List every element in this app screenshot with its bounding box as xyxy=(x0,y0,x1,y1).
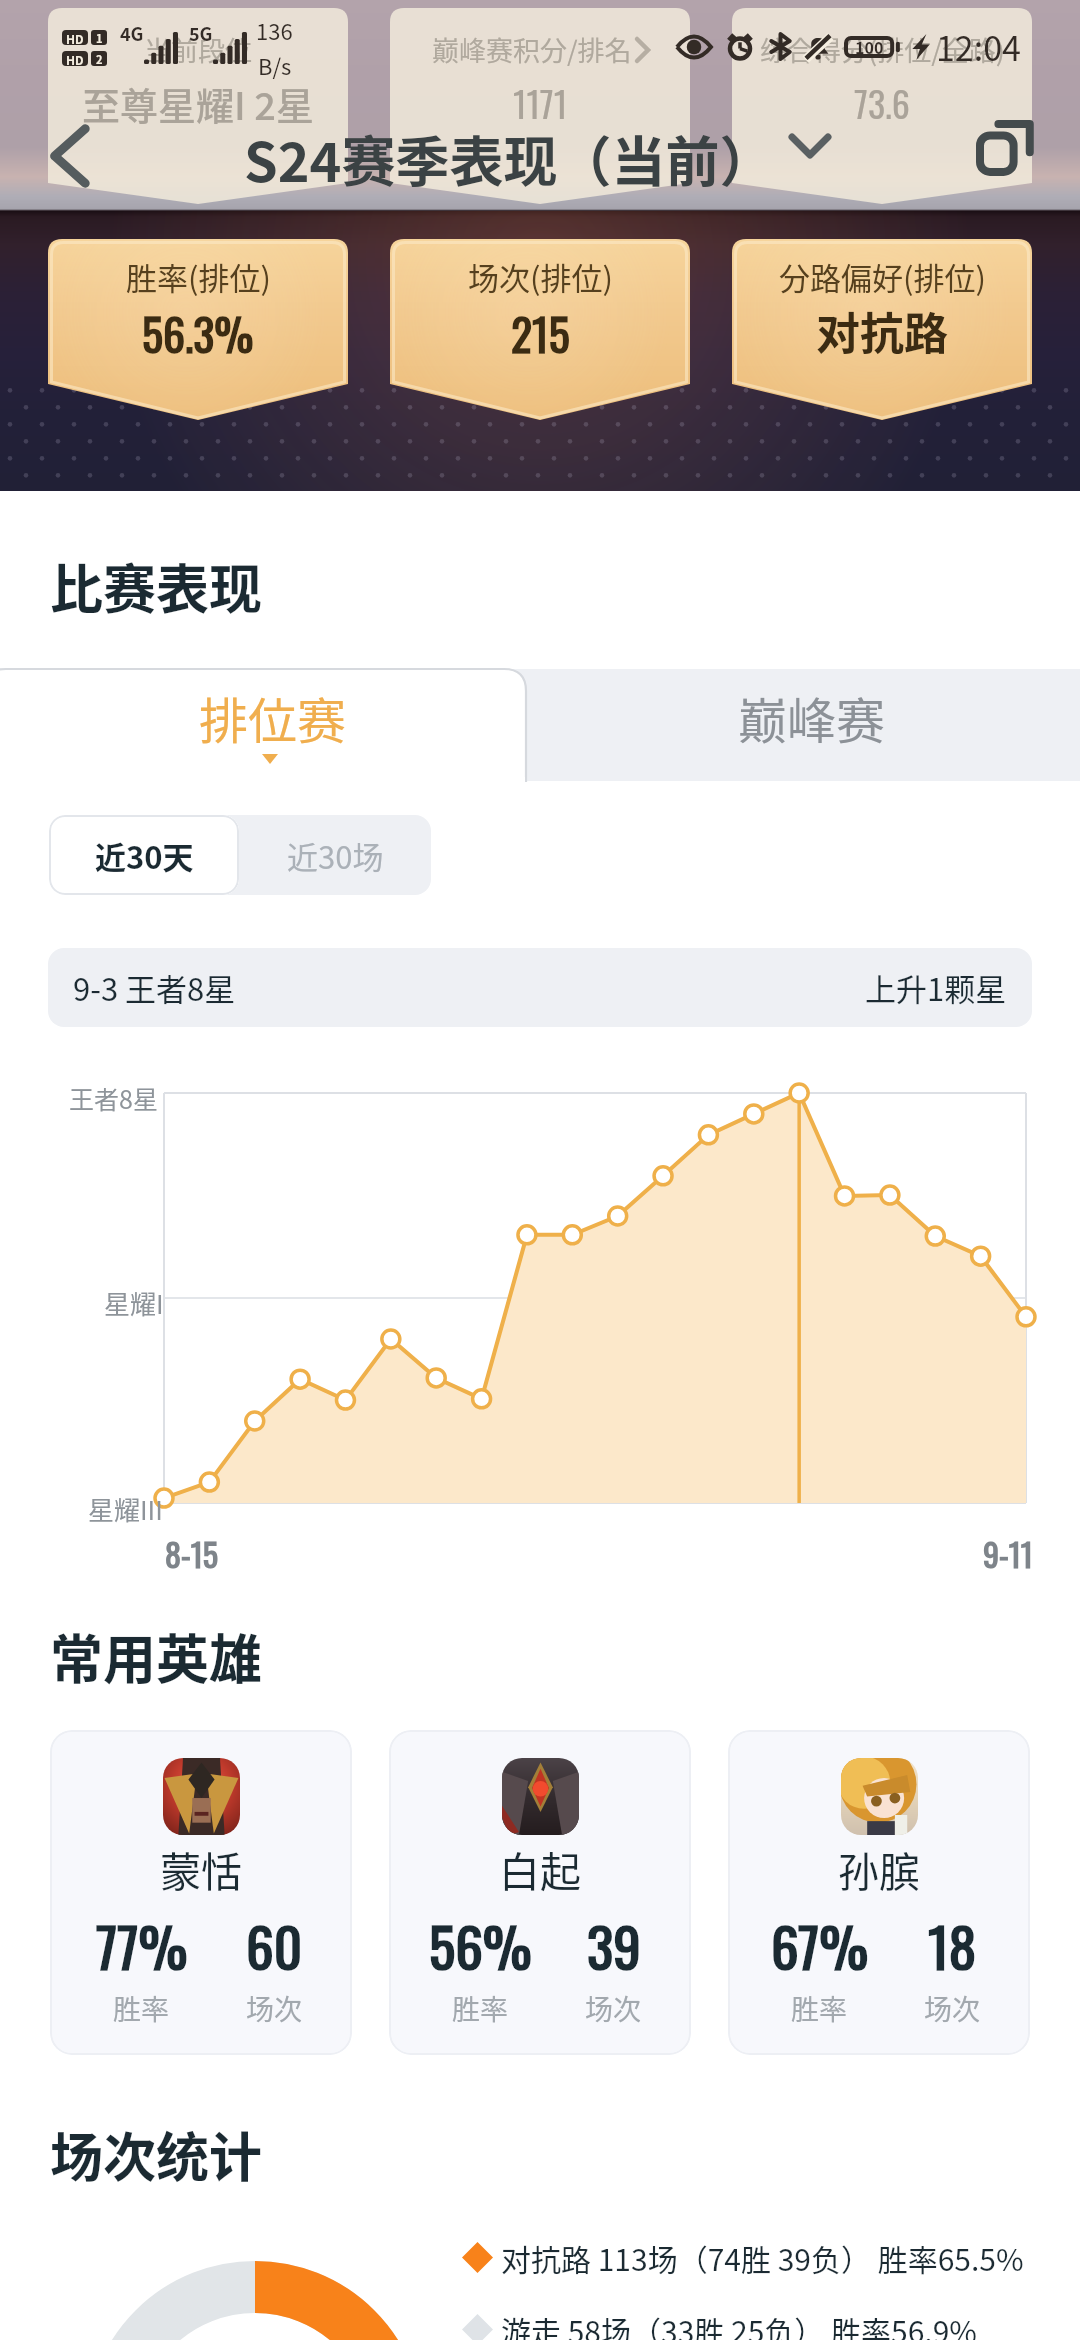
button[interactable]: 9-3 王者8星 xyxy=(48,948,1032,1027)
staticText: 常用英雄 xyxy=(50,1618,262,1695)
staticText: 场次(排位) xyxy=(468,254,613,299)
staticText: 8-15 xyxy=(165,1530,218,1577)
staticText: 巅峰赛积分/排名 xyxy=(432,30,632,69)
staticText: 白起 xyxy=(499,1839,581,1898)
staticText: 56% xyxy=(429,1904,532,1986)
button[interactable]: 分路偏好(排位) xyxy=(732,239,1032,420)
staticText: S24赛季表现（当前） xyxy=(244,119,774,197)
staticText: 至尊星耀I 2星 xyxy=(82,76,314,131)
button[interactable]: 对抗路 113场（74胜 39负） 胜率65.5% xyxy=(462,2236,1024,2279)
staticText: 56.3% xyxy=(142,301,254,366)
staticText: 73.6 xyxy=(854,76,910,129)
button[interactable]: 游走 58场（33胜 25负） 胜率56.9% xyxy=(462,2308,977,2340)
staticText: 胜率 xyxy=(452,1988,509,2029)
staticText: 王者8星 xyxy=(69,1080,158,1116)
button[interactable]: 近30场 xyxy=(239,815,431,895)
staticText: 100 xyxy=(855,35,884,58)
staticText: 场次 xyxy=(246,1988,303,2029)
staticText: 对抗路 113场（74胜 39负） 胜率65.5% xyxy=(501,2236,1024,2279)
button[interactable]: Expand xyxy=(774,110,846,182)
staticText: 215 xyxy=(511,301,570,366)
staticText: 1 xyxy=(96,30,103,45)
staticText: B/s xyxy=(258,49,292,81)
staticText: 星耀III xyxy=(88,1490,163,1528)
staticText: 比赛表现 xyxy=(50,548,262,625)
staticText: 场次 xyxy=(924,1988,981,2029)
staticText: 5G xyxy=(189,20,213,46)
staticText: 上升1颗星 xyxy=(865,965,1007,1010)
staticText: 当前段位 xyxy=(144,30,252,69)
staticText: 星耀I xyxy=(104,1284,164,1322)
staticText: 67% xyxy=(771,1904,869,1986)
button[interactable]: 孙膑 xyxy=(728,1730,1030,2055)
staticText: 77% xyxy=(96,1904,188,1986)
staticText: HD xyxy=(66,30,84,45)
staticText: 136 xyxy=(256,14,293,46)
staticText: 1171 xyxy=(513,76,568,129)
staticText: 60 xyxy=(246,1904,303,1986)
staticText: 18 xyxy=(928,1904,977,1986)
button[interactable]: 近30天 xyxy=(49,815,239,895)
button[interactable]: 蒙恬 xyxy=(50,1730,352,2055)
staticText: 9-3 王者8星 xyxy=(73,965,236,1010)
button[interactable]: 排位赛 xyxy=(0,669,526,781)
button[interactable]: Share xyxy=(962,106,1046,190)
button[interactable]: Back xyxy=(27,114,111,198)
staticText: 39 xyxy=(587,1904,641,1986)
staticText: 胜率 xyxy=(791,1988,848,2029)
staticText: 胜率(排位) xyxy=(126,254,271,299)
button[interactable]: 胜率(排位) xyxy=(48,239,348,420)
staticText: 近30场 xyxy=(287,833,384,878)
staticText: 场次统计 xyxy=(50,2116,262,2193)
staticText: 9-11 xyxy=(983,1530,1033,1577)
staticText: 排位赛 xyxy=(199,682,347,753)
staticText: 场次 xyxy=(585,1988,642,2029)
staticText: 分路偏好(排位) xyxy=(779,254,986,299)
staticText: 2 xyxy=(96,51,103,66)
staticText: 4G xyxy=(120,20,144,46)
staticText: 蒙恬 xyxy=(160,1839,242,1898)
staticText: 巅峰赛 xyxy=(738,682,886,753)
button[interactable]: 场次(排位) xyxy=(390,239,690,420)
staticText: 孙膑 xyxy=(838,1839,920,1898)
staticText: 胜率 xyxy=(113,1988,170,2029)
staticText: 综合得分(排位/全路) xyxy=(760,30,1005,69)
staticText: 近30天 xyxy=(95,833,194,878)
staticText: 12:04 xyxy=(936,22,1021,71)
staticText: 对抗路 xyxy=(816,299,948,363)
button[interactable]: 巅峰赛 xyxy=(526,669,1080,781)
staticText: HD xyxy=(66,51,84,66)
button[interactable]: 白起 xyxy=(389,1730,691,2055)
staticText: 游走 58场（33胜 25负） 胜率56.9% xyxy=(501,2308,977,2340)
